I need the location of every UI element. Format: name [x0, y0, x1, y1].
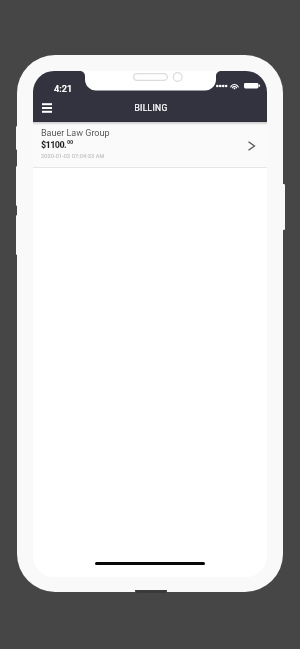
staticText: BILLING	[34, 103, 267, 113]
staticText: 00	[67, 139, 73, 145]
button[interactable]: Bauer Law Group	[33, 122, 267, 168]
staticText: $1100.	[41, 140, 67, 151]
staticText: 4:21	[54, 83, 73, 94]
button[interactable]: Open navigation menu	[34, 95, 60, 121]
staticText: Bauer Law Group	[41, 128, 110, 139]
staticText: 2020-01-02 07:04:33 AM	[41, 153, 105, 159]
